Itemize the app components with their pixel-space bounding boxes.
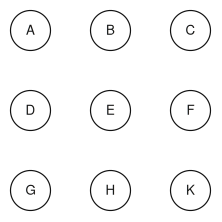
button[interactable]: K <box>170 170 210 210</box>
button[interactable]: H <box>90 170 130 210</box>
button[interactable]: B <box>90 10 130 50</box>
button[interactable]: F <box>170 90 210 130</box>
staticText: E <box>106 100 115 119</box>
staticText: D <box>25 100 35 119</box>
staticText: G <box>25 180 35 199</box>
staticText: B <box>106 20 115 39</box>
button[interactable]: G <box>10 170 50 210</box>
button[interactable]: D <box>10 90 50 130</box>
staticText: A <box>26 20 35 39</box>
staticText: H <box>105 180 115 199</box>
staticText: K <box>186 180 195 199</box>
button[interactable]: E <box>90 90 130 130</box>
staticText: F <box>186 100 194 119</box>
button[interactable]: C <box>170 10 210 50</box>
staticText: C <box>185 20 195 39</box>
button[interactable]: A <box>10 10 50 50</box>
